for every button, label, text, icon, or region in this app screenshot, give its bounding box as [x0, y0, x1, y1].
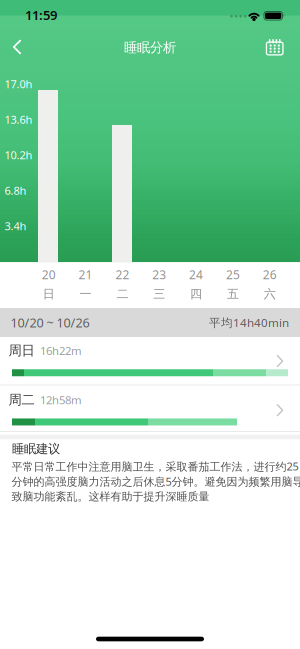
staticText: 日 — [43, 286, 55, 301]
staticText: 25 — [226, 266, 240, 283]
staticText: 10.2h — [4, 147, 32, 163]
staticText: 13.6h — [4, 112, 32, 127]
staticText: 20 — [42, 266, 56, 283]
staticText: 五 — [227, 286, 239, 301]
staticText: 11:59 — [25, 6, 57, 24]
staticText: 平常日常工作中注意用脑卫生，采取番茄工作法，进行约25 — [11, 459, 298, 474]
staticText: 睡眠建议 — [12, 441, 60, 457]
staticText: 分钟的高强度脑力活动之后休息5分钟。避免因为频繁用脑导 — [11, 474, 300, 489]
staticText: 四 — [190, 286, 202, 301]
button[interactable]: 周二 — [0, 386, 300, 434]
staticText: 二 — [116, 286, 128, 301]
staticText: 三 — [153, 286, 165, 301]
staticText: 23 — [152, 266, 166, 283]
staticText: 26 — [263, 266, 277, 283]
staticText: 周日 — [8, 342, 34, 359]
staticText: 17.0h — [4, 76, 32, 92]
staticText: 一 — [80, 286, 92, 301]
staticText: 10/20 ~ 10/26 — [10, 314, 89, 331]
staticText: 睡眠分析 — [124, 39, 176, 56]
staticText: 12h58m — [40, 392, 82, 407]
staticText: 6.8h — [4, 183, 26, 198]
staticText: 周二 — [8, 391, 34, 408]
staticText: 16h22m — [40, 343, 82, 358]
staticText: 24 — [189, 266, 203, 283]
button[interactable]: Calendar — [260, 31, 290, 61]
staticText: 21 — [79, 266, 93, 283]
staticText: 3.4h — [4, 218, 26, 234]
button[interactable]: 周日 — [0, 337, 300, 385]
staticText: 六 — [264, 286, 276, 301]
staticText: 致脑功能紊乱。这样有助于提升深睡质量 — [11, 490, 209, 504]
button[interactable]: Back — [2, 30, 32, 64]
staticText: 22 — [115, 266, 129, 283]
staticText: 平均14h40min — [209, 315, 289, 330]
